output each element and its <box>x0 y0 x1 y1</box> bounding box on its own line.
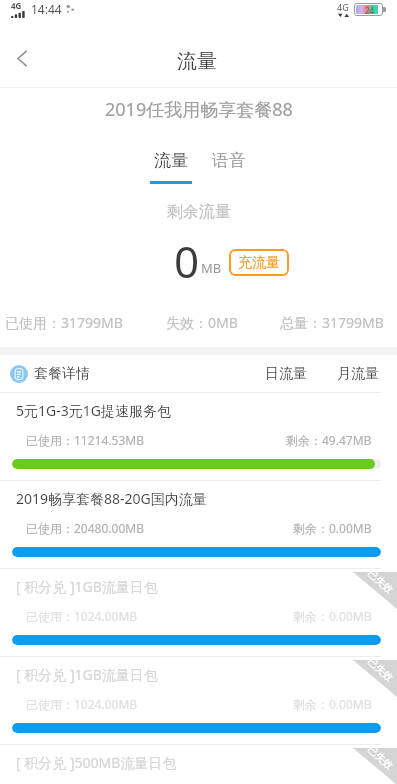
button[interactable]: 语音 <box>204 126 254 171</box>
staticText: 4G <box>11 0 22 11</box>
staticText: [ 积分兑 ]1GB流量日包 <box>16 577 158 596</box>
staticText: 0 <box>174 231 200 291</box>
staticText: 套餐详情 <box>34 365 90 383</box>
staticText: 5元1G-3元1G提速服务包 <box>16 401 171 420</box>
staticText: 4G <box>337 1 349 13</box>
staticText: MB <box>201 259 222 277</box>
staticText: 已失效 <box>365 742 396 772</box>
staticText: 月流量 <box>337 365 379 383</box>
staticText: 剩余：0.00MB <box>293 608 372 624</box>
staticText: 剩余：49.47MB <box>286 432 372 448</box>
button[interactable]: [ 积分兑 ]1GB流量日包 <box>0 656 397 744</box>
button[interactable]: 充流量 <box>229 249 289 276</box>
staticText: 剩余：0.00MB <box>293 520 372 536</box>
staticText: 24 <box>365 5 375 14</box>
button[interactable]: 流量 <box>142 126 200 184</box>
staticText: 已使用：31799MB <box>5 313 123 332</box>
staticText: 总量：31799MB <box>280 313 384 332</box>
staticText: 14:44 <box>31 1 62 17</box>
staticText: [ 积分兑 ]500MB流量日包 <box>16 753 177 772</box>
staticText: 剩余流量 <box>167 202 231 222</box>
staticText: 已使用：1024.00MB <box>26 608 138 624</box>
staticText: 失效：0MB <box>166 313 238 332</box>
staticText: 充流量 <box>238 254 280 272</box>
button[interactable]: [ 积分兑 ]500MB流量日包 <box>0 744 397 784</box>
staticText: 已使用：1024.00MB <box>26 696 138 712</box>
staticText: 日流量 <box>265 365 307 383</box>
button[interactable]: 5元1G-3元1G提速服务包 <box>0 392 397 480</box>
button[interactable]: [ 积分兑 ]1GB流量日包 <box>0 568 397 656</box>
staticText: 2019畅享套餐88-20G国内流量 <box>16 489 207 508</box>
staticText: 已失效 <box>365 654 396 684</box>
staticText: 流量 <box>154 150 188 171</box>
button[interactable]: 2019畅享套餐88-20G国内流量 <box>0 480 397 568</box>
staticText: 已使用：20480.00MB <box>26 520 144 536</box>
staticText: 流量 <box>177 49 217 74</box>
staticText: 已使用：11214.53MB <box>26 432 144 448</box>
staticText: 已失效 <box>365 566 396 596</box>
button[interactable]: 返回 <box>2 38 42 78</box>
staticText: 语音 <box>212 150 246 171</box>
staticText: 2019任我用畅享套餐88 <box>105 97 293 122</box>
staticText: 剩余：0.00MB <box>293 696 372 712</box>
staticText: [ 积分兑 ]1GB流量日包 <box>16 665 158 684</box>
